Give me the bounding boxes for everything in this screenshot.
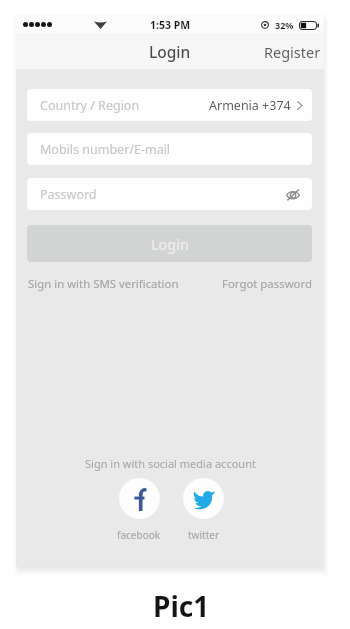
button[interactable]: Forgot password xyxy=(222,276,312,292)
staticText: twitter xyxy=(188,528,220,542)
button[interactable]: Login xyxy=(149,41,191,62)
staticText: 32% xyxy=(275,19,294,31)
staticText: Pic1 xyxy=(153,587,210,625)
button[interactable]: Password xyxy=(27,178,312,210)
staticText: Sign in with SMS verification xyxy=(28,276,179,292)
staticText: Login xyxy=(149,41,191,62)
staticText: Sign in with social media account xyxy=(85,456,256,471)
staticText: Forgot password xyxy=(222,276,312,292)
button[interactable]: Sign in with SMS verification xyxy=(28,276,179,292)
staticText: facebook xyxy=(117,528,161,542)
staticText: Register xyxy=(264,42,321,62)
staticText: 1:53 PM xyxy=(150,18,191,32)
button[interactable]: Country / Region xyxy=(27,89,312,121)
staticText: Login xyxy=(151,234,189,254)
button[interactable]: facebook xyxy=(119,478,160,519)
button[interactable]: Register xyxy=(264,42,321,62)
button[interactable]: Show password xyxy=(286,188,300,201)
button[interactable]: twitter xyxy=(183,478,224,519)
button[interactable]: Mobils number/E-mail xyxy=(27,133,312,165)
staticText: Password xyxy=(40,186,97,203)
staticText: Country / Region xyxy=(40,97,140,114)
staticText: Armenia +374 xyxy=(209,97,291,114)
staticText: Mobils number/E-mail xyxy=(40,141,171,158)
